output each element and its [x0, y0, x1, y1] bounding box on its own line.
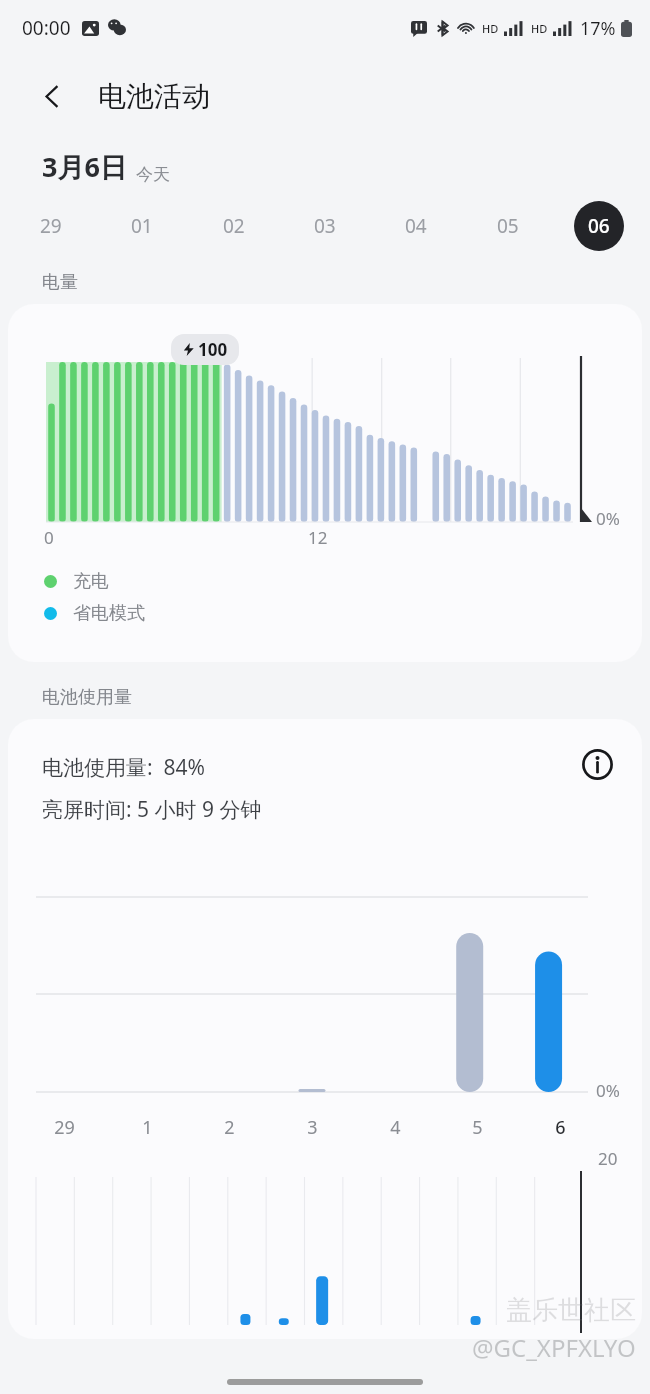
staticText: 今天 — [136, 164, 170, 185]
staticText: 亮屏时间: 5 小时 9 分钟 — [42, 795, 262, 824]
button[interactable]: 电池使用量: 84% — [8, 719, 642, 1339]
button[interactable]: 03 — [300, 201, 350, 251]
staticText: HD — [531, 21, 548, 36]
staticText: 0% — [596, 507, 620, 530]
staticText: 充电 — [73, 570, 109, 593]
button[interactable]: 02 — [209, 201, 259, 251]
staticText: 电池使用量: 84% — [42, 753, 206, 782]
staticText: 29 — [54, 1115, 75, 1140]
staticText: 0% — [596, 1079, 620, 1102]
button[interactable]: 信息 — [574, 741, 620, 787]
button[interactable]: 05 — [483, 201, 533, 251]
staticText: 00:00 — [22, 15, 71, 41]
staticText: 盖乐世社区 — [506, 1294, 636, 1327]
staticText: 电池使用量 — [42, 686, 132, 709]
staticText: 省电模式 — [73, 602, 145, 625]
staticText: 0 — [44, 526, 54, 549]
staticText: 29 — [40, 213, 62, 239]
staticText: 100 — [198, 338, 228, 361]
staticText: 电量 — [42, 271, 78, 294]
button[interactable]: 01 — [117, 201, 167, 251]
staticText: 17% — [580, 16, 616, 41]
staticText: 1 — [142, 1115, 153, 1140]
button[interactable]: 29 — [26, 201, 76, 251]
staticText: 3月6日 — [42, 148, 127, 185]
staticText: @GC_XPFXLYO — [472, 1331, 636, 1364]
staticText: 20 — [598, 1147, 618, 1170]
button[interactable]: 100 — [8, 304, 642, 662]
staticText: 4 — [390, 1115, 401, 1140]
button[interactable]: 返回 — [28, 72, 76, 120]
staticText: 01 — [131, 213, 153, 239]
staticText: 电池活动 — [98, 79, 210, 114]
staticText: 5 — [472, 1115, 483, 1140]
staticText: 04 — [405, 213, 427, 239]
staticText: 06 — [588, 213, 610, 239]
staticText: HD — [482, 21, 499, 36]
staticText: 3 — [307, 1115, 318, 1140]
staticText: 6 — [555, 1115, 566, 1140]
staticText: 2 — [224, 1115, 235, 1140]
staticText: 03 — [314, 213, 336, 239]
staticText: 12 — [308, 526, 328, 549]
staticText: 05 — [497, 213, 519, 239]
staticText: 02 — [223, 213, 245, 239]
button[interactable]: 04 — [391, 201, 441, 251]
button[interactable]: 06 — [574, 201, 624, 251]
